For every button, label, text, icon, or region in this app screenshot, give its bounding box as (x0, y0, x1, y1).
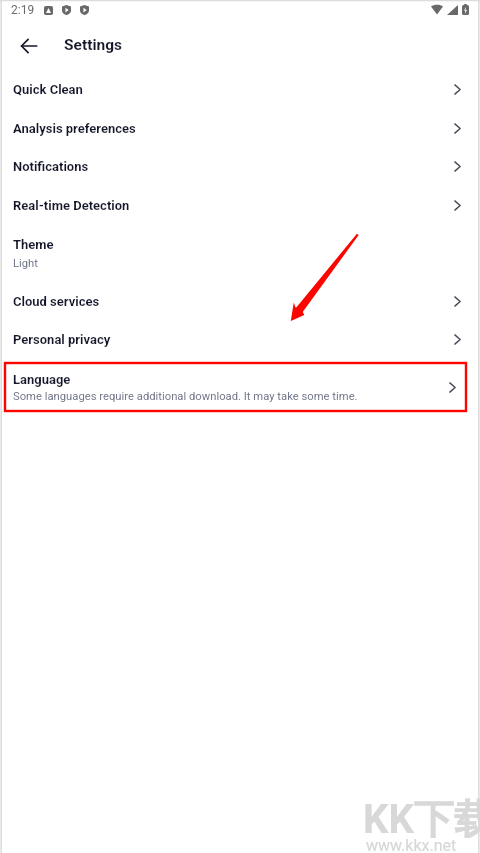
button[interactable]: Language (5, 363, 466, 411)
button[interactable]: Quick Clean (0, 70, 480, 108)
button[interactable]: Analysis preferences (0, 109, 480, 147)
staticText: www.kkx.net (366, 836, 457, 853)
staticText: Some languages require additional downlo… (13, 390, 358, 403)
staticText: Real-time Detection (13, 198, 130, 213)
staticText: Cloud services (13, 294, 100, 309)
staticText: Theme (13, 237, 54, 252)
staticText: Light (13, 257, 38, 270)
staticText: Personal privacy (13, 332, 111, 347)
staticText: Quick Clean (13, 82, 83, 97)
staticText: Settings (64, 36, 123, 54)
staticText: KK下载 (363, 794, 480, 844)
staticText: Analysis preferences (13, 121, 136, 136)
button[interactable]: Notifications (0, 147, 480, 185)
button[interactable]: Cloud services (0, 282, 480, 320)
button[interactable]: Theme (0, 230, 480, 277)
button[interactable]: Back (18, 35, 40, 57)
button[interactable]: Personal privacy (0, 320, 480, 358)
staticText: Language (13, 372, 71, 387)
staticText: Notifications (13, 159, 89, 174)
staticText: 2:19 (11, 3, 35, 17)
button[interactable]: Real-time Detection (0, 186, 480, 224)
